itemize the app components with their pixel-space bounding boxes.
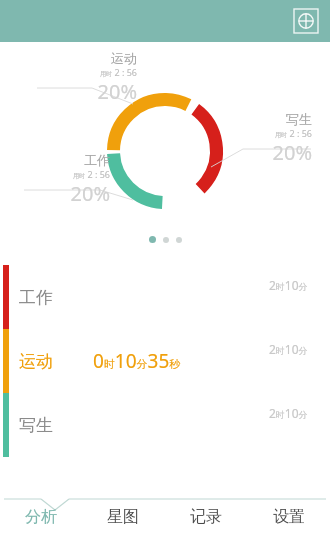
- staticText: 设置: [273, 507, 305, 527]
- staticText: 0时10分35秒: [93, 348, 181, 374]
- staticText: 20%: [48, 180, 110, 207]
- staticText: 用时 2 : 56: [75, 66, 137, 78]
- staticText: 工作: [19, 287, 53, 308]
- staticText: 用时 2 : 56: [48, 168, 110, 180]
- staticText: 20%: [75, 78, 137, 105]
- staticText: 2时10分: [269, 341, 308, 357]
- staticText: 运动: [19, 351, 53, 372]
- staticText: 分析: [25, 507, 57, 527]
- button[interactable]: 工作: [0, 265, 330, 329]
- staticText: 运动: [75, 50, 137, 66]
- button[interactable]: 分析: [0, 495, 82, 538]
- button[interactable]: 星图: [82, 495, 164, 538]
- button[interactable]: 记录: [164, 495, 247, 538]
- staticText: 记录: [190, 507, 222, 527]
- staticText: 用时 2 : 56: [242, 127, 312, 139]
- button[interactable]: 写生: [0, 393, 330, 457]
- staticText: 2时10分: [269, 277, 308, 293]
- staticText: 写生: [242, 111, 312, 127]
- staticText: 星图: [107, 507, 139, 527]
- staticText: 写生: [19, 415, 53, 436]
- button[interactable]: Add: [294, 9, 318, 33]
- button[interactable]: 运动: [0, 329, 330, 393]
- staticText: 20%: [242, 139, 312, 166]
- staticText: 2时10分: [269, 405, 308, 421]
- staticText: 工作: [48, 152, 110, 168]
- button[interactable]: 设置: [247, 495, 330, 538]
